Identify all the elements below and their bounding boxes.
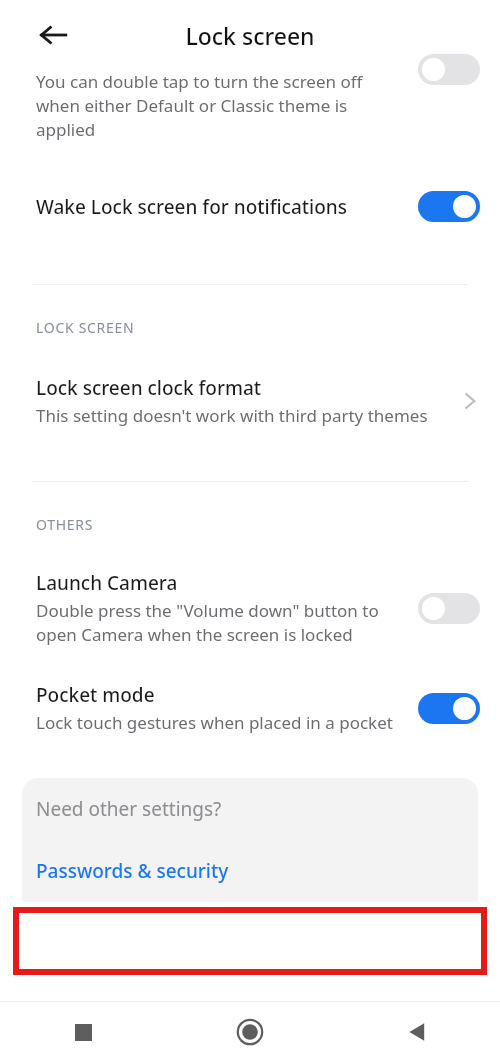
- staticText: OTHERS: [36, 515, 94, 534]
- staticText: LOCK SCREEN: [36, 318, 135, 337]
- staticText: Lock screen: [185, 20, 315, 51]
- button[interactable]: Launch Camera toggle, off: [418, 593, 480, 624]
- button[interactable]: Wake Lock screen toggle, on: [418, 191, 480, 222]
- button[interactable]: Back: [333, 1002, 500, 1062]
- staticText: Need other settings?: [36, 796, 222, 822]
- button[interactable]: Pocket mode toggle, on: [418, 693, 480, 724]
- button[interactable]: Home: [166, 1002, 333, 1062]
- staticText: Wake Lock screen for notifications: [36, 194, 347, 220]
- button[interactable]: You can double tap to turn the screen of…: [0, 70, 500, 141]
- button[interactable]: Recents: [0, 1002, 166, 1062]
- staticText: Pocket mode: [36, 682, 155, 708]
- button[interactable]: Pocket mode: [0, 676, 500, 740]
- button[interactable]: Back: [30, 11, 78, 59]
- staticText: You can double tap to turn the screen of…: [36, 70, 404, 141]
- button[interactable]: Launch Camera: [0, 564, 500, 652]
- staticText: Launch Camera: [36, 570, 178, 596]
- staticText: Double press the "Volume down" button to…: [36, 599, 404, 646]
- staticText: Lock touch gestures when placed in a poc…: [36, 711, 393, 734]
- staticText: Lock screen clock format: [36, 375, 262, 401]
- staticText: This setting doesn't work with third par…: [36, 404, 428, 427]
- button[interactable]: Passwords & security: [22, 840, 478, 902]
- button[interactable]: Wake Lock screen for notifications: [0, 185, 500, 228]
- staticText: Passwords & security: [36, 858, 229, 884]
- button[interactable]: Lock screen clock format: [0, 369, 500, 433]
